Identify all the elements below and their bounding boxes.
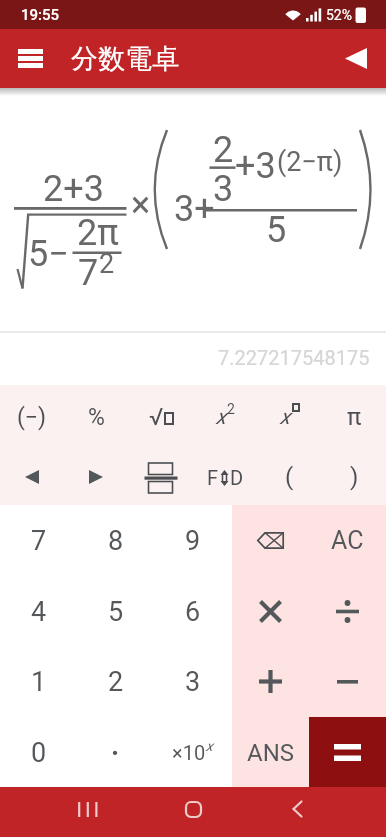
staticText: 2 — [108, 666, 124, 698]
staticText: 2π — [77, 212, 119, 254]
button[interactable] — [309, 717, 386, 788]
button[interactable]: ( — [257, 447, 321, 507]
button[interactable] — [129, 447, 193, 507]
button[interactable]: ) — [322, 447, 386, 507]
button[interactable]: ANS — [232, 717, 309, 788]
staticText: · — [111, 737, 120, 769]
staticText: 5− — [28, 233, 69, 275]
button[interactable] — [273, 787, 321, 831]
staticText: +3 — [235, 145, 276, 187]
staticText: π — [347, 403, 362, 431]
staticText: 1 — [31, 666, 47, 698]
button[interactable]: (−) — [0, 387, 64, 447]
staticText: x — [216, 405, 227, 430]
staticText: √ — [149, 403, 164, 431]
staticText: ANS — [247, 739, 295, 767]
button[interactable]: 8 — [77, 505, 154, 576]
staticText: 2 — [227, 401, 235, 417]
staticText: 7 — [31, 525, 47, 557]
staticText: 6 — [185, 596, 201, 628]
staticText: 9 — [185, 525, 201, 557]
staticText: 2 — [213, 129, 234, 171]
staticText: 3 — [185, 666, 201, 698]
staticText: (−) — [17, 404, 47, 431]
staticText: 52% — [326, 7, 352, 23]
staticText: ( — [285, 463, 294, 491]
staticText: 8 — [108, 525, 124, 557]
staticText: x — [206, 738, 213, 754]
staticText: 5 — [108, 596, 124, 628]
staticText: x — [280, 405, 291, 430]
staticText: 19:55 — [21, 6, 60, 24]
staticText: (2−π) — [277, 146, 343, 178]
staticText: 2 — [99, 248, 115, 280]
button[interactable]: 0 — [0, 717, 77, 788]
staticText: F — [207, 466, 219, 489]
button[interactable]: AC — [309, 505, 386, 576]
staticText: ) — [350, 463, 359, 491]
button[interactable] — [0, 447, 64, 507]
button[interactable] — [232, 576, 309, 647]
staticText: × — [131, 184, 151, 226]
staticText: 3+ — [174, 188, 215, 230]
button[interactable] — [232, 505, 309, 576]
button[interactable]: x — [193, 387, 257, 447]
staticText: ×10 — [172, 741, 206, 764]
button[interactable] — [309, 576, 386, 647]
button[interactable]: √ — [129, 387, 193, 447]
staticText: 3 — [213, 168, 234, 210]
staticText: 7.227217548175 — [218, 346, 370, 369]
staticText: 4 — [31, 596, 47, 628]
button[interactable]: ×10 — [154, 717, 231, 788]
button[interactable] — [169, 787, 217, 831]
button[interactable]: 1 — [0, 646, 77, 717]
staticText: 5 — [266, 209, 287, 251]
button[interactable]: 5 — [77, 576, 154, 647]
button[interactable] — [6, 34, 54, 82]
button[interactable]: 7 — [0, 505, 77, 576]
button[interactable]: π — [322, 387, 386, 447]
button[interactable]: 6 — [154, 576, 231, 647]
button[interactable]: x — [257, 387, 321, 447]
button[interactable]: 2 — [77, 646, 154, 717]
staticText: 分数電卓 — [71, 42, 179, 76]
staticText: 0 — [31, 737, 47, 769]
staticText: AC — [331, 526, 364, 555]
button[interactable]: 9 — [154, 505, 231, 576]
button[interactable] — [332, 34, 380, 82]
button[interactable]: % — [64, 387, 128, 447]
button[interactable]: F — [193, 447, 257, 507]
button[interactable]: · — [77, 717, 154, 788]
button[interactable] — [64, 787, 112, 831]
button[interactable]: 4 — [0, 576, 77, 647]
button[interactable] — [309, 646, 386, 717]
button[interactable] — [232, 646, 309, 717]
staticText: D — [230, 466, 244, 489]
staticText: 7 — [78, 252, 99, 294]
staticText: % — [88, 404, 105, 431]
button[interactable] — [64, 447, 128, 507]
staticText: 2+3 — [43, 168, 104, 210]
button[interactable]: 3 — [154, 646, 231, 717]
